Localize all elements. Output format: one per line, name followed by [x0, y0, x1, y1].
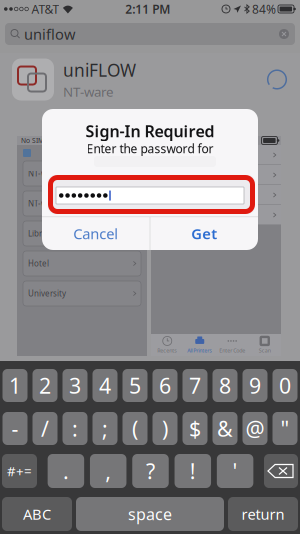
staticText: ' — [233, 457, 238, 485]
staticText: " — [280, 414, 289, 443]
staticText: 3 — [69, 371, 81, 400]
staticText: ; — [102, 414, 108, 443]
staticText: NT-ware HQ — [28, 168, 73, 179]
button[interactable]: 9 — [242, 369, 267, 402]
staticText: ! — [190, 457, 196, 485]
staticText: uniflow — [24, 24, 76, 44]
staticText: Hotel — [28, 258, 49, 269]
staticText: uniFLOW — [63, 59, 136, 82]
button[interactable]: 7 — [182, 369, 207, 402]
staticText: . — [63, 457, 69, 485]
staticText: #+= — [7, 462, 32, 480]
button[interactable]: Delete — [264, 454, 298, 488]
button[interactable]: 3 — [62, 369, 87, 402]
button[interactable]: ' — [217, 454, 253, 488]
button[interactable]: - — [2, 412, 27, 445]
staticText: 9 — [249, 371, 261, 400]
button[interactable]: return — [228, 497, 298, 531]
staticText: 0 — [279, 371, 291, 400]
staticText: iR-ADV C5235 — [168, 150, 221, 160]
staticText: 1 — [9, 371, 21, 400]
staticText: University — [28, 288, 66, 299]
button[interactable]: #+= — [2, 454, 37, 488]
button[interactable]: 2 — [32, 369, 57, 402]
staticText: - — [11, 414, 18, 443]
button[interactable]: ABC — [2, 497, 72, 531]
staticText: 7 — [189, 371, 201, 400]
staticText: return — [241, 504, 284, 524]
button[interactable]: ) — [152, 412, 177, 445]
staticText: Get — [191, 224, 217, 243]
button[interactable]: 0 — [272, 369, 297, 402]
staticText: No SIM — [21, 136, 44, 145]
button[interactable]: / — [32, 412, 57, 445]
button[interactable]: 8 — [212, 369, 237, 402]
staticText: 4 — [99, 371, 111, 400]
staticText: ) — [162, 414, 168, 443]
staticText: Library — [28, 228, 53, 239]
staticText: iR-ADV C2220 — [168, 170, 221, 180]
staticText: @ — [245, 414, 264, 443]
button[interactable]: 1 — [2, 369, 27, 402]
staticText: , — [105, 457, 111, 485]
staticText: Scan — [259, 347, 271, 354]
staticText: space — [128, 503, 172, 525]
staticText: 6 — [159, 371, 171, 400]
staticText: : — [72, 414, 78, 443]
button[interactable]: , — [90, 454, 126, 488]
button[interactable]: 4 — [92, 369, 117, 402]
button[interactable]: @ — [242, 412, 267, 445]
staticText: ? — [146, 457, 155, 485]
button[interactable]: Cancel — [42, 217, 150, 250]
button[interactable]: : — [62, 412, 87, 445]
staticText: 5 — [129, 371, 141, 400]
staticText: Enter Code — [219, 347, 245, 354]
staticText: NT-ware Of — [28, 198, 70, 209]
button[interactable]: $ — [182, 412, 207, 445]
button[interactable]: " — [272, 412, 297, 445]
staticText: ABC — [23, 504, 51, 524]
button[interactable]: Get — [150, 217, 258, 250]
staticText: Recents — [157, 347, 177, 354]
button[interactable]: space — [76, 497, 224, 531]
staticText: iR-ADV C2230 — [168, 210, 221, 220]
staticText: 2 — [39, 371, 51, 400]
button[interactable]: 6 — [152, 369, 177, 402]
staticText: AT&T — [31, 1, 59, 17]
staticText: 8 — [219, 371, 231, 400]
staticText: 84% — [252, 1, 276, 17]
staticText: Enter the password for — [86, 140, 213, 156]
button[interactable]: . — [48, 454, 84, 488]
staticText: ( — [132, 414, 138, 443]
staticText: Sign-In Required — [85, 120, 214, 142]
staticText: 2:11 PM — [125, 1, 170, 17]
staticText: / — [41, 414, 49, 443]
button[interactable]: ; — [92, 412, 117, 445]
button[interactable]: ? — [132, 454, 169, 488]
staticText: NT-ware — [63, 83, 114, 100]
staticText: & — [217, 414, 233, 443]
staticText: All Printers — [187, 347, 212, 354]
button[interactable]: ( — [122, 412, 147, 445]
staticText: Cancel — [73, 224, 118, 243]
staticText: $ — [189, 414, 201, 443]
button[interactable]: 5 — [122, 369, 147, 402]
button[interactable]: & — [212, 412, 237, 445]
button[interactable]: ! — [175, 454, 211, 488]
